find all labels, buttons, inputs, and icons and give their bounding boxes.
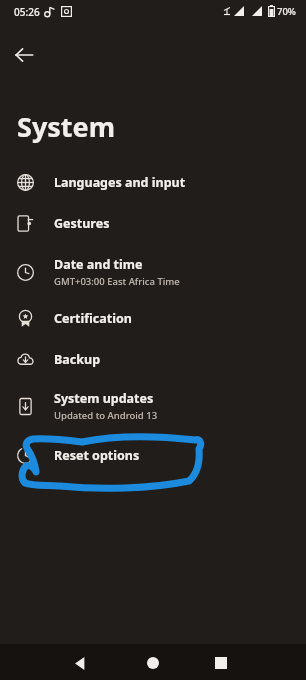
button[interactable]: Back: [70, 652, 92, 674]
staticText: 05:26: [14, 5, 40, 19]
button[interactable]: Date and time: [0, 246, 306, 298]
button[interactable]: Backup: [0, 339, 306, 380]
button[interactable]: Reset options: [0, 435, 306, 476]
button[interactable]: Languages and input: [0, 162, 306, 203]
staticText: Gestures: [54, 215, 110, 232]
staticText: Languages and input: [54, 174, 186, 191]
staticText: Certification: [54, 310, 132, 327]
staticText: Reset options: [54, 447, 140, 464]
staticText: Date and time: [54, 256, 143, 273]
button[interactable]: Recent apps: [210, 652, 232, 674]
staticText: 70%: [277, 5, 296, 18]
staticText: Updated to Android 13: [54, 409, 158, 422]
button[interactable]: Certification: [0, 298, 306, 339]
staticText: System updates: [54, 390, 154, 407]
button[interactable]: Back: [6, 37, 42, 73]
staticText: System: [17, 108, 116, 145]
staticText: GMT+03:00 East Africa Time: [54, 275, 180, 288]
button[interactable]: Gestures: [0, 203, 306, 244]
staticText: Backup: [54, 351, 101, 368]
button[interactable]: System updates: [0, 380, 306, 432]
button[interactable]: Home: [142, 652, 164, 674]
